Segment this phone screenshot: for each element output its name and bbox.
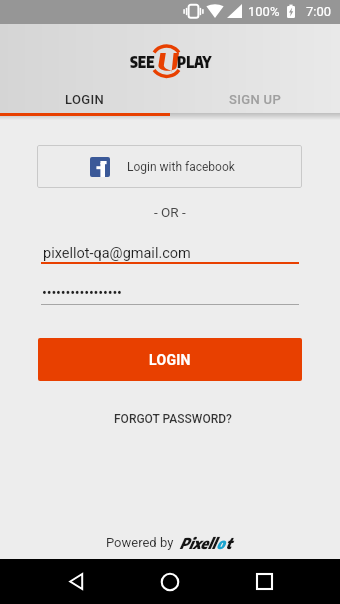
staticText: Powered by — [106, 535, 174, 550]
button[interactable]: Login with facebook — [37, 145, 302, 188]
staticText: SEE — [130, 53, 155, 72]
staticText: - OR - — [154, 204, 186, 220]
staticText: SIGN UP — [229, 92, 282, 107]
button[interactable]: LOGIN — [0, 85, 170, 114]
button[interactable]: LOGIN — [38, 338, 302, 381]
button[interactable]: SIGN UP — [170, 85, 340, 114]
staticText: 100% — [248, 4, 280, 19]
staticText: t — [225, 534, 231, 553]
staticText: ••••••••••••••••• — [42, 285, 122, 302]
staticText: o — [216, 534, 225, 553]
button[interactable]: FORGOT PASSWORD? — [102, 405, 244, 433]
button[interactable]: Home — [147, 559, 193, 604]
staticText: FORGOT PASSWORD? — [114, 412, 232, 426]
button[interactable]: Recent apps — [241, 559, 287, 604]
staticText: LOGIN — [65, 92, 105, 107]
staticText: 7:00 — [306, 4, 332, 19]
staticText: LOGIN — [149, 352, 191, 368]
staticText: Login with facebook — [127, 160, 235, 174]
button[interactable]: Back — [53, 559, 99, 604]
staticText: PLAY — [177, 53, 212, 72]
staticText: Pixell — [179, 534, 216, 553]
staticText: pixellot-qa@gmail.com — [43, 245, 191, 262]
